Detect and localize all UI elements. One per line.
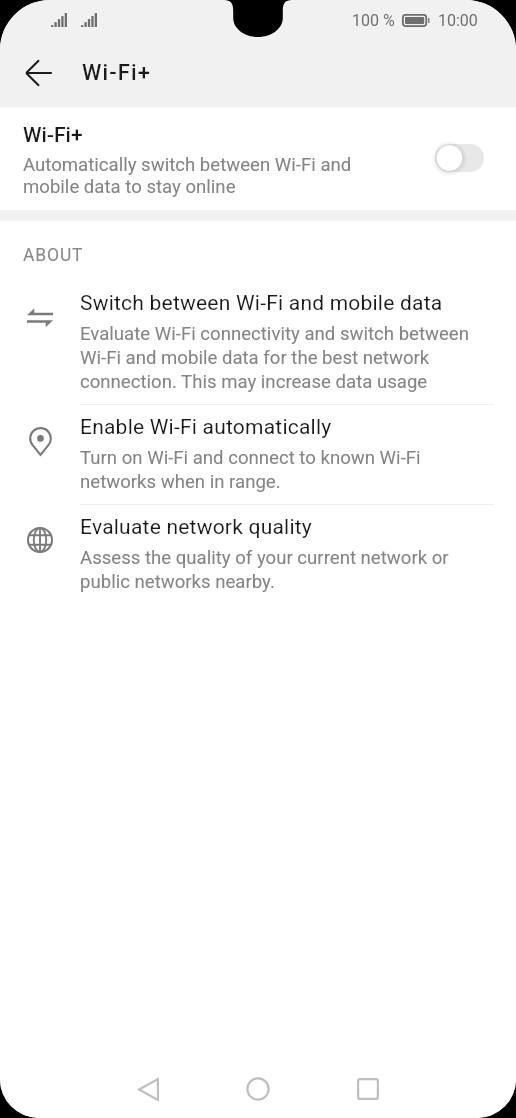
button[interactable]: Wi-Fi+ toggle [435, 144, 484, 172]
button[interactable]: Evaluate network quality [0, 515, 516, 615]
staticText: Evaluate Wi-Fi connectivity and switch b… [80, 323, 469, 393]
staticText: Evaluate network quality [80, 515, 312, 540]
button[interactable]: Enable Wi-Fi automatically [0, 415, 516, 515]
staticText: ABOUT [23, 245, 84, 266]
staticText: 10:00 [438, 11, 478, 30]
staticText: Turn on Wi-Fi and connect to known Wi-Fi… [80, 447, 421, 493]
staticText: Wi-Fi+ [82, 60, 151, 86]
button[interactable]: Home [220, 1051, 296, 1118]
button[interactable]: Back [110, 1051, 186, 1118]
staticText: Assess the quality of your current netwo… [80, 547, 449, 593]
button[interactable]: Wi-Fi+ [0, 107, 516, 210]
staticText: Automatically switch between Wi-Fi and m… [23, 154, 352, 198]
button[interactable]: Back [15, 49, 63, 97]
button[interactable]: Recents [330, 1051, 406, 1118]
staticText: Enable Wi-Fi automatically [80, 415, 332, 440]
staticText: 100 % [352, 11, 395, 30]
staticText: Wi-Fi+ [23, 123, 83, 148]
staticText: Switch between Wi-Fi and mobile data [80, 291, 443, 316]
button[interactable]: Switch between Wi-Fi and mobile data [0, 291, 516, 415]
